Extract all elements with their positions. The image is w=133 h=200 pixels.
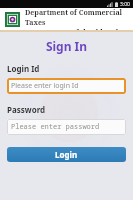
staticText: Department of Commercial Taxes bbox=[25, 8, 133, 28]
staticText: Sign In bbox=[0, 38, 133, 54]
staticText: Password bbox=[7, 104, 46, 115]
staticText: Please enter login Id bbox=[11, 81, 79, 91]
button[interactable]: Login Id input bbox=[7, 78, 126, 94]
staticText: Login Id bbox=[7, 63, 40, 74]
button[interactable]: Password input bbox=[7, 119, 126, 135]
staticText: Login bbox=[55, 149, 78, 160]
staticText: Government of Jharkhand bbox=[25, 28, 119, 30]
staticText: 3:00 bbox=[120, 1, 130, 8]
button[interactable]: Login bbox=[7, 147, 126, 162]
other: Department emblem bbox=[5, 12, 20, 27]
staticText: Please enter password bbox=[11, 122, 100, 132]
